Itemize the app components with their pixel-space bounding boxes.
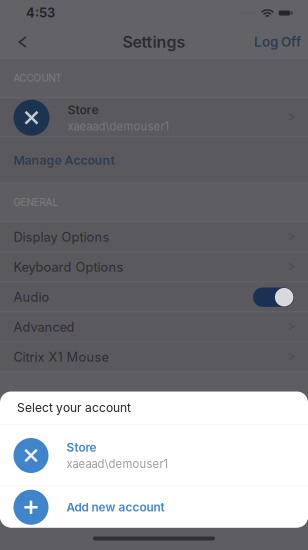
staticText: Settings [122,32,185,52]
button[interactable]: Audio [0,282,308,312]
staticText: GENERAL [13,196,58,208]
staticText: ACCOUNT [13,72,61,84]
staticText: Citrix X1 Mouse [13,349,108,365]
staticText: Store [66,440,96,455]
button[interactable]: Store [0,98,308,137]
staticText: Add new account [66,500,164,514]
staticText: Audio [13,289,49,305]
button[interactable]: Add new account [0,486,308,528]
button[interactable]: Manage Account [0,137,308,183]
staticText: Select your account [17,400,131,415]
staticText: Manage Account [13,153,114,168]
staticText: Advanced [13,319,74,335]
staticText: Log Off [254,34,301,50]
button[interactable]: Back [0,26,39,58]
button[interactable]: Advanced [0,312,308,342]
button[interactable]: Keyboard Options [0,252,308,282]
staticText: xaeaad\demouser1 [67,120,169,133]
staticText: Display Options [13,229,109,245]
staticText: Store [67,102,98,117]
button[interactable]: Store [0,425,308,486]
button[interactable]: Display Options [0,222,308,252]
button[interactable]: Citrix X1 Mouse [0,342,308,372]
staticText: 4:53 [26,5,55,21]
staticText: xaeaad\demouser1 [66,457,168,471]
staticText: Keyboard Options [13,259,123,275]
button[interactable]: Log Off [254,26,308,58]
